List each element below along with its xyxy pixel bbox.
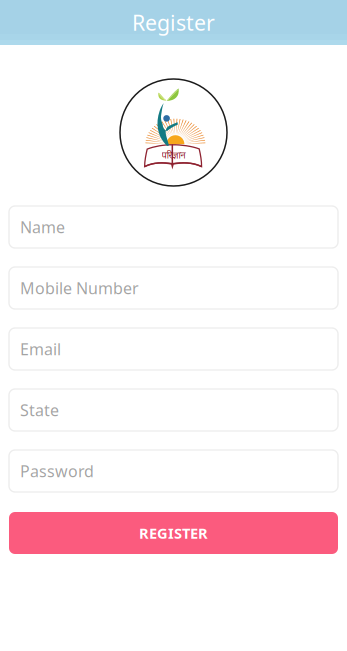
staticText: Password bbox=[20, 460, 94, 482]
staticText: Name bbox=[20, 216, 65, 238]
staticText: REGISTER bbox=[139, 523, 208, 543]
button[interactable]: REGISTER bbox=[9, 512, 338, 554]
staticText: Register bbox=[132, 8, 215, 37]
staticText: परिज्ञान bbox=[161, 149, 185, 161]
staticText: Email bbox=[20, 338, 61, 360]
staticText: Mobile Number bbox=[20, 277, 139, 299]
staticText: State bbox=[20, 399, 59, 421]
